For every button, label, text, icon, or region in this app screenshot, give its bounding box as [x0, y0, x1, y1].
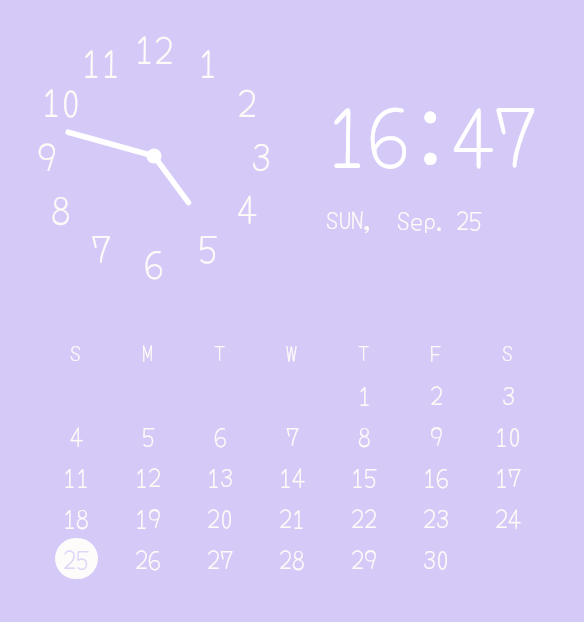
button[interactable]: 17 [487, 456, 530, 497]
button[interactable]: 10 [487, 415, 530, 456]
staticText: 24 [495, 499, 522, 537]
button[interactable]: 7 [271, 415, 314, 456]
button[interactable]: 13 [199, 456, 242, 497]
staticText: W [286, 336, 298, 368]
button[interactable]: 24 [487, 497, 530, 538]
staticText: 25 [63, 540, 90, 578]
staticText: M [142, 336, 154, 368]
staticText: 13 [207, 458, 234, 496]
staticText: 11 [81, 34, 121, 84]
staticText: T [214, 336, 226, 368]
staticText: 28 [279, 540, 306, 578]
staticText: 21 [279, 499, 306, 537]
button[interactable]: 29 [343, 538, 386, 579]
staticText: 12 [134, 20, 174, 70]
staticText: 25 [456, 201, 483, 233]
button[interactable]: 23 [415, 497, 458, 538]
staticText: 19 [135, 499, 162, 537]
staticText: 11 [63, 458, 90, 496]
button[interactable]: 5 [127, 415, 170, 456]
button[interactable]: 22 [343, 497, 386, 538]
staticText: 4 [237, 180, 257, 230]
button[interactable]: 16 [415, 456, 458, 497]
staticText: 7 [91, 219, 111, 269]
button[interactable]: T [184, 330, 256, 374]
button[interactable]: 2 [415, 374, 458, 415]
button[interactable]: M [112, 330, 184, 374]
staticText: 2 [430, 376, 444, 414]
staticText: 6 [214, 417, 228, 455]
staticText: 18 [63, 499, 90, 537]
button[interactable]: 6 [199, 415, 242, 456]
button[interactable]: 18 [55, 497, 98, 538]
button[interactable]: 20 [199, 497, 242, 538]
staticText: 16 [423, 458, 450, 496]
button[interactable]: T [328, 330, 400, 374]
staticText: 5 [142, 417, 156, 455]
staticText: 9 [430, 417, 444, 455]
staticText: 14 [279, 458, 306, 496]
staticText: 30 [423, 540, 450, 578]
staticText: 20 [207, 499, 234, 537]
staticText: 7 [286, 417, 300, 455]
staticText: 3 [251, 127, 271, 177]
button[interactable]: 16:47 [326, 72, 536, 192]
staticText: Sep. [397, 201, 450, 233]
staticText: 6 [144, 234, 164, 284]
staticText: 27 [207, 540, 234, 578]
button[interactable]: 11 [55, 456, 98, 497]
staticText: 2 [237, 73, 257, 123]
button[interactable]: 28 [271, 538, 314, 579]
staticText: 1 [358, 376, 372, 414]
staticText: 26 [135, 540, 162, 578]
button[interactable]: W [256, 330, 328, 374]
button[interactable]: 30 [415, 538, 458, 579]
staticText: 10 [495, 417, 522, 455]
staticText: SUN, [326, 201, 377, 233]
staticText: 5 [198, 219, 218, 269]
button[interactable]: S [40, 330, 112, 374]
staticText: 1 [198, 34, 218, 84]
staticText: 9 [37, 127, 57, 177]
staticText: S [502, 336, 514, 368]
button[interactable]: 8 [343, 415, 386, 456]
button[interactable]: S [472, 330, 544, 374]
button[interactable]: 27 [199, 538, 242, 579]
staticText: 22 [351, 499, 378, 537]
staticText: 29 [351, 540, 378, 578]
staticText: 23 [423, 499, 450, 537]
button[interactable]: 26 [127, 538, 170, 579]
staticText: F [430, 336, 442, 368]
button[interactable]: 25 [55, 538, 98, 579]
button[interactable]: 3 [487, 374, 530, 415]
staticText: 17 [495, 458, 522, 496]
button[interactable]: 1 [343, 374, 386, 415]
button[interactable]: F [400, 330, 472, 374]
button[interactable]: Analog clock, 4:47 [20, 22, 288, 290]
staticText: 8 [51, 180, 71, 230]
button[interactable]: 4 [55, 415, 98, 456]
staticText: T [358, 336, 370, 368]
button[interactable]: 21 [271, 497, 314, 538]
button[interactable]: 14 [271, 456, 314, 497]
staticText: S [70, 336, 82, 368]
button[interactable]: 19 [127, 497, 170, 538]
staticText: 12 [135, 458, 162, 496]
staticText: 4 [70, 417, 84, 455]
staticText: 16:47 [326, 72, 536, 192]
staticText: 3 [502, 376, 516, 414]
button[interactable]: 12 [127, 456, 170, 497]
staticText: 15 [351, 458, 378, 496]
staticText: 10 [41, 73, 81, 123]
button[interactable]: SUN, [326, 201, 483, 233]
button[interactable]: 9 [415, 415, 458, 456]
button[interactable]: 15 [343, 456, 386, 497]
staticText: 8 [358, 417, 372, 455]
